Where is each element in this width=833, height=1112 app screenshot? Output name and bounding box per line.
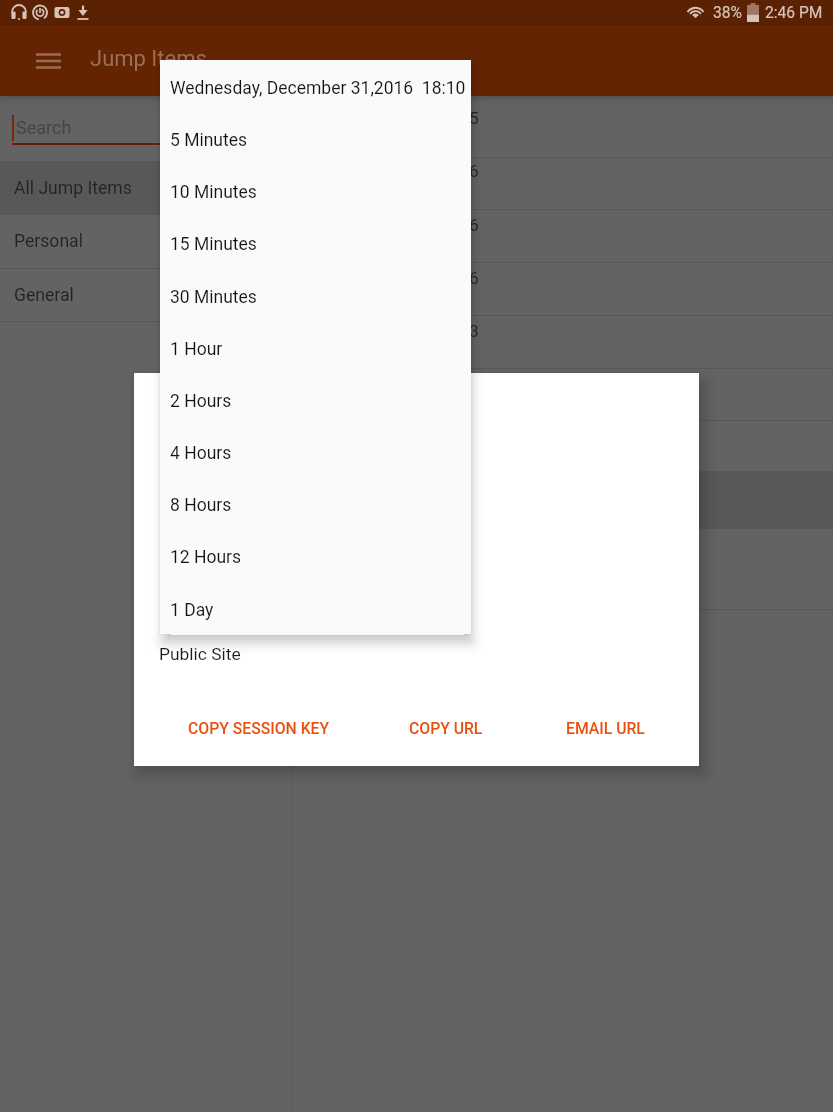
button[interactable]: Personal bbox=[0, 215, 291, 267]
button[interactable]: Wednesday, December 31,2016 18:10 bbox=[160, 60, 471, 112]
staticText: COPY SESSION KEY bbox=[188, 719, 330, 737]
staticText: 1 Hour bbox=[170, 339, 223, 360]
staticText: 1 Day bbox=[170, 600, 214, 621]
button[interactable]: 2 Hours bbox=[160, 373, 471, 425]
staticText: General bbox=[14, 285, 74, 306]
staticText: EMAIL URL bbox=[566, 719, 645, 737]
staticText: Personal bbox=[14, 231, 83, 252]
staticText: 12 Hours bbox=[170, 547, 242, 568]
button[interactable]: 10 Minutes bbox=[160, 164, 471, 216]
button[interactable]: Support Session 26 bbox=[292, 256, 833, 308]
button[interactable]: 1 Day bbox=[160, 582, 471, 634]
button[interactable]: General bbox=[0, 269, 291, 321]
button[interactable]: 5 Minutes bbox=[160, 112, 471, 164]
button[interactable]: Support Session 26 bbox=[292, 149, 833, 201]
button[interactable]: 1 Hour bbox=[160, 321, 471, 373]
button[interactable]: 12 Hours bbox=[160, 529, 471, 581]
button[interactable]: 15 Minutes bbox=[160, 216, 471, 268]
staticText: Wednesday, December 31,2016 18:10 bbox=[170, 78, 466, 99]
staticText: 2 Hours bbox=[170, 391, 232, 412]
button[interactable]: COPY SESSION KEY bbox=[157, 710, 360, 746]
staticText: 4 Hours bbox=[170, 443, 232, 464]
button[interactable] bbox=[292, 471, 833, 528]
staticText: Public Site bbox=[159, 644, 241, 664]
staticText: COPY URL bbox=[409, 719, 483, 737]
staticText: 15 Minutes bbox=[170, 234, 257, 255]
staticText: Support Session 45 bbox=[328, 108, 479, 128]
button[interactable]: Open navigation drawer bbox=[26, 39, 70, 83]
button[interactable]: EMAIL URL bbox=[536, 710, 674, 746]
staticText: Support Session 33 bbox=[328, 321, 479, 341]
button[interactable]: COPY URL bbox=[381, 710, 511, 746]
staticText: All Jump Items bbox=[14, 178, 132, 199]
staticText: 2:46 PM bbox=[765, 4, 823, 22]
staticText: 8 Hours bbox=[170, 495, 232, 516]
staticText: Jump Items bbox=[90, 46, 207, 72]
staticText: Support Session 26 bbox=[328, 161, 479, 181]
button[interactable]: 8 Hours bbox=[160, 477, 471, 529]
button[interactable]: Support Session 33 bbox=[292, 309, 833, 361]
button[interactable]: 4 Hours bbox=[160, 425, 471, 477]
staticText: Support Session 26 bbox=[328, 268, 479, 288]
staticText: 30 Minutes bbox=[170, 287, 257, 308]
staticText: Support Session 26 bbox=[328, 215, 479, 235]
button[interactable]: 30 Minutes bbox=[160, 269, 471, 321]
staticText: 38% bbox=[713, 4, 742, 22]
staticText: 10 Minutes bbox=[170, 182, 257, 203]
button[interactable]: Search jump items bbox=[0, 96, 291, 160]
staticText: 5 Minutes bbox=[170, 130, 248, 151]
staticText: Search bbox=[16, 117, 72, 138]
button[interactable]: Support Session 26 bbox=[292, 203, 833, 255]
button[interactable]: All Jump Items bbox=[0, 162, 291, 214]
button[interactable]: Support Session 45 bbox=[292, 96, 833, 148]
